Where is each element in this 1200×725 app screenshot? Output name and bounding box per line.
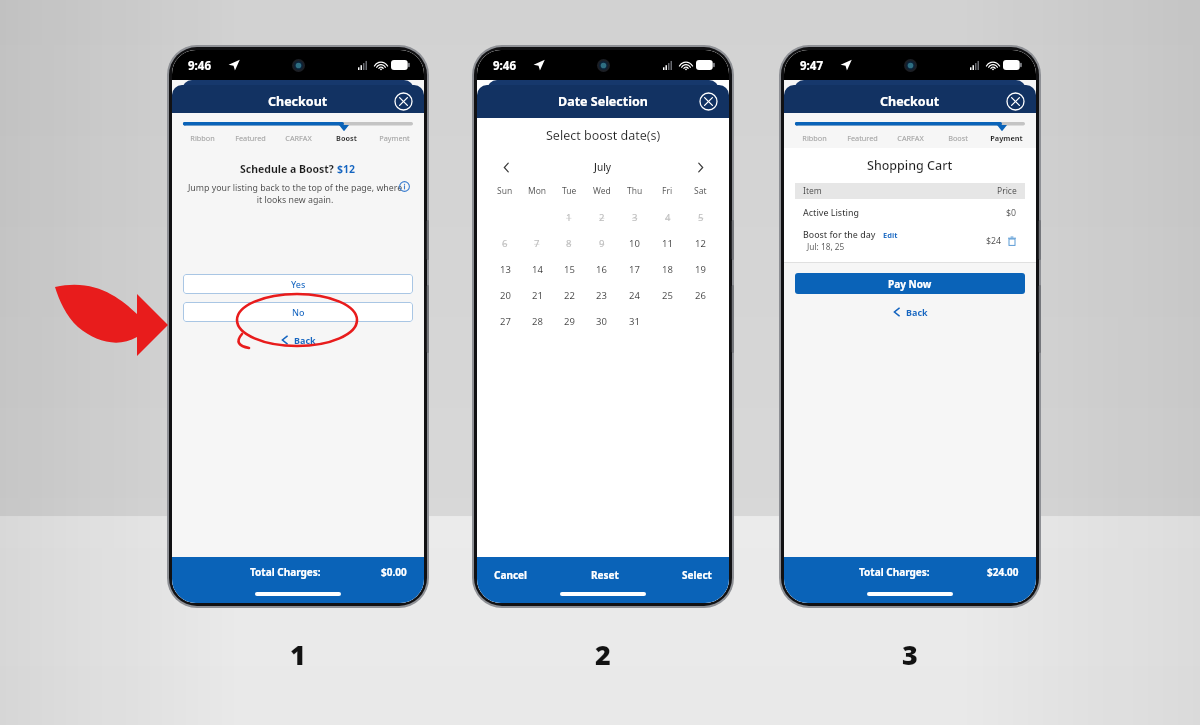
staticText: 25 [662, 289, 673, 302]
staticText: Boost [948, 133, 968, 143]
button[interactable]: Boost [934, 133, 982, 143]
button[interactable]: 28 [521, 308, 553, 334]
button[interactable]: 5 [684, 204, 717, 230]
staticText: Checkout [268, 93, 328, 110]
staticText: Sun [497, 185, 513, 197]
staticText: Total Charges: [250, 565, 321, 579]
button[interactable]: 25 [651, 282, 684, 308]
staticText: 31 [629, 315, 640, 328]
button[interactable]: 17 [618, 256, 651, 282]
button[interactable]: 26 [684, 282, 717, 308]
staticText: CARFAX [897, 133, 924, 143]
staticText: 2 [595, 636, 611, 673]
button[interactable]: 10 [618, 230, 651, 256]
button[interactable]: 11 [651, 230, 684, 256]
button[interactable]: 7 [521, 230, 553, 256]
staticText: 7 [534, 237, 540, 250]
staticText: 1 [566, 211, 572, 224]
button[interactable]: 27 [489, 308, 521, 334]
staticText: Select [682, 568, 712, 582]
button[interactable]: Payment [982, 133, 1030, 143]
button[interactable]: Close [394, 92, 413, 111]
button[interactable]: Featured [226, 133, 274, 143]
staticText: 11 [662, 237, 673, 250]
button[interactable]: 22 [553, 282, 585, 308]
button[interactable]: 14 [521, 256, 553, 282]
staticText: Fri [662, 185, 673, 197]
button[interactable]: Delete item [1007, 236, 1017, 246]
staticText: CARFAX [285, 133, 312, 143]
button[interactable]: Active Listing [803, 207, 1017, 219]
button[interactable]: 23 [585, 282, 618, 308]
button[interactable]: Next month [691, 158, 709, 176]
button[interactable]: 29 [553, 308, 585, 334]
button[interactable]: CARFAX [886, 133, 934, 143]
staticText: Checkout [880, 93, 940, 110]
button[interactable]: 20 [489, 282, 521, 308]
staticText: Jump your listing back to the top of the… [186, 182, 404, 206]
staticText: Wed [593, 185, 611, 197]
button[interactable]: Back [882, 302, 938, 322]
button[interactable]: 3 [618, 204, 651, 230]
button[interactable]: 15 [553, 256, 585, 282]
button[interactable]: Yes [183, 274, 413, 294]
button[interactable]: Pay Now [795, 273, 1025, 294]
button[interactable]: Cancel [491, 565, 531, 585]
staticText: 27 [500, 315, 511, 328]
button[interactable]: 1 [553, 204, 585, 230]
staticText: 14 [532, 263, 543, 276]
button[interactable]: 12 [684, 230, 717, 256]
button[interactable]: Payment [370, 133, 418, 143]
button[interactable]: Ribbon [790, 133, 838, 143]
button[interactable]: Boost for the day [803, 229, 1017, 252]
staticText: Sat [694, 185, 707, 197]
staticText: 23 [596, 289, 607, 302]
staticText: Jul: 18, 25 [807, 241, 845, 252]
button[interactable]: Ribbon [178, 133, 226, 143]
staticText: Payment [379, 133, 410, 143]
staticText: 9:46 [493, 58, 516, 74]
staticText: Mon [528, 185, 547, 197]
button[interactable]: Boost [322, 133, 370, 143]
button[interactable]: 31 [618, 308, 651, 334]
staticText: 10 [629, 237, 640, 250]
staticText: 6 [502, 237, 508, 250]
button[interactable]: Select [679, 565, 715, 585]
button[interactable]: Close [699, 92, 718, 111]
staticText: 19 [695, 263, 706, 276]
button[interactable]: 30 [585, 308, 618, 334]
button[interactable]: 8 [553, 230, 585, 256]
button[interactable]: 21 [521, 282, 553, 308]
staticText: Tue [562, 185, 577, 197]
button[interactable]: 24 [618, 282, 651, 308]
button[interactable]: Edit [883, 230, 898, 240]
button[interactable]: 9 [585, 230, 618, 256]
staticText: 9:46 [188, 58, 211, 74]
button[interactable]: 4 [651, 204, 684, 230]
button[interactable]: Close [1006, 92, 1025, 111]
button[interactable]: 19 [684, 256, 717, 282]
staticText: Price [997, 185, 1017, 197]
staticText: 2 [599, 211, 605, 224]
button[interactable]: 18 [651, 256, 684, 282]
button[interactable]: 6 [489, 230, 521, 256]
button[interactable]: Back [270, 330, 326, 350]
button[interactable]: Info [399, 181, 410, 192]
staticText: Total Charges: [859, 565, 930, 579]
button[interactable]: 16 [585, 256, 618, 282]
button[interactable]: Reset [588, 565, 622, 585]
button[interactable]: No [183, 302, 413, 322]
staticText: Boost [336, 133, 357, 143]
button[interactable]: 2 [585, 204, 618, 230]
button[interactable]: CARFAX [274, 133, 322, 143]
button[interactable]: Previous month [497, 158, 515, 176]
staticText: Back [906, 306, 928, 318]
button[interactable]: Featured [838, 133, 886, 143]
staticText: 9 [599, 237, 605, 250]
staticText: Ribbon [802, 133, 827, 143]
staticText: Active Listing [803, 207, 859, 219]
staticText: Yes [291, 278, 306, 290]
staticText: $0 [1006, 207, 1017, 219]
button[interactable]: 13 [489, 256, 521, 282]
staticText: Cancel [494, 568, 528, 582]
